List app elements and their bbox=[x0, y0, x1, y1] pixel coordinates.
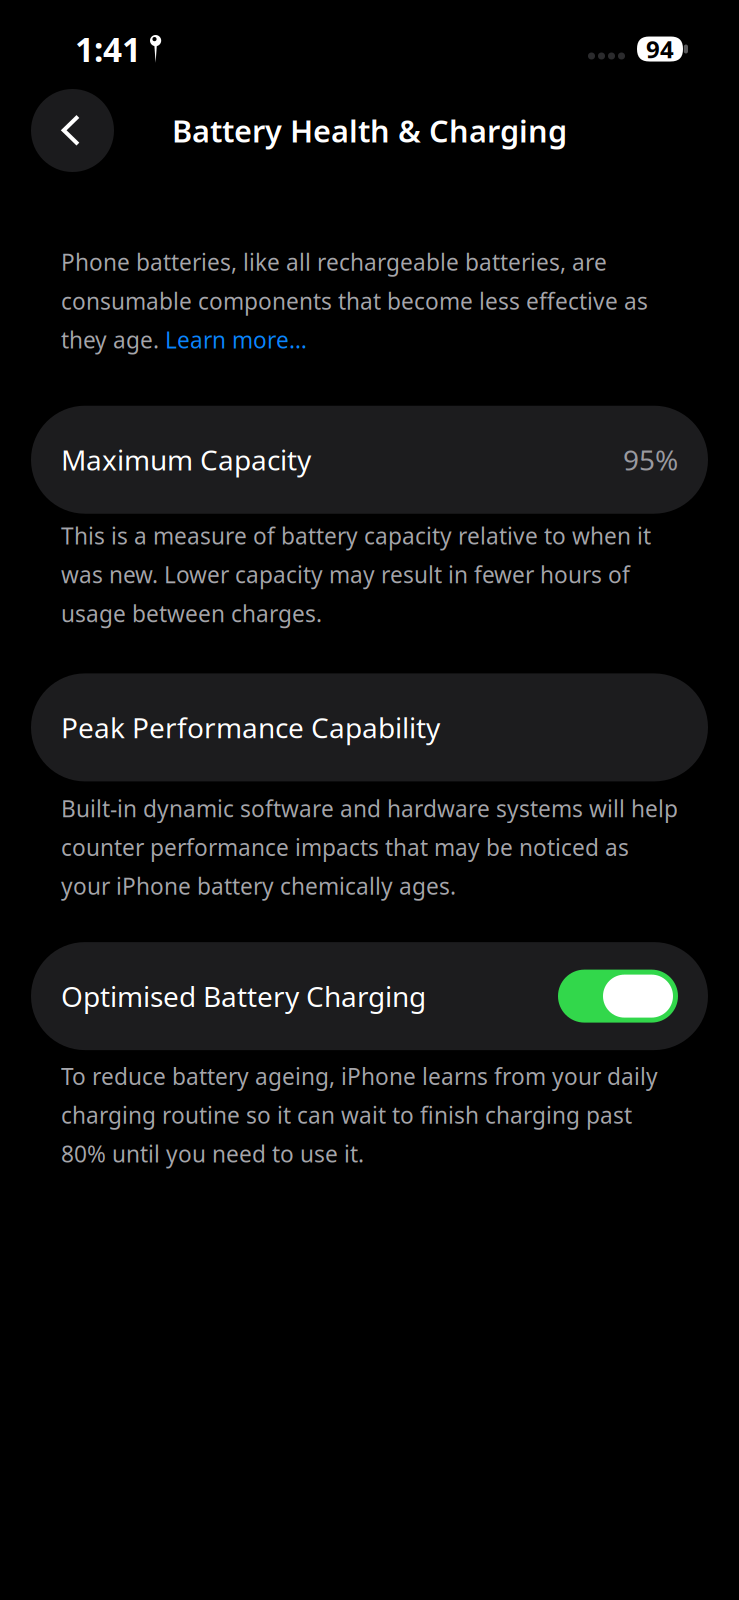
staticText: To reduce battery ageing, iPhone learns … bbox=[61, 1061, 658, 1169]
staticText: they age. bbox=[61, 325, 165, 355]
staticText: Optimised Battery Charging bbox=[61, 977, 426, 1015]
button[interactable]: Back bbox=[31, 89, 114, 172]
staticText: Battery Health & Charging bbox=[172, 110, 567, 151]
staticText: Maximum Capacity bbox=[61, 441, 311, 478]
staticText: 95% bbox=[623, 441, 678, 478]
staticText: 1:41 bbox=[75, 27, 141, 71]
button[interactable]: Maximum Capacity bbox=[31, 406, 708, 514]
staticText: Peak Performance Capability bbox=[61, 709, 440, 746]
button[interactable]: Peak Performance Capability bbox=[31, 673, 708, 781]
staticText: Built-in dynamic software and hardware s… bbox=[61, 793, 678, 901]
button[interactable]: Optimised Battery Charging bbox=[31, 942, 708, 1050]
button[interactable]: Optimised Battery Charging, on bbox=[558, 970, 678, 1023]
staticText: 94 bbox=[646, 33, 674, 65]
staticText: Learn more… bbox=[165, 325, 307, 355]
button[interactable]: Learn more… bbox=[165, 325, 307, 355]
staticText: This is a measure of battery capacity re… bbox=[61, 521, 651, 628]
staticText: Phone batteries, like all rechargeable b… bbox=[61, 247, 648, 316]
